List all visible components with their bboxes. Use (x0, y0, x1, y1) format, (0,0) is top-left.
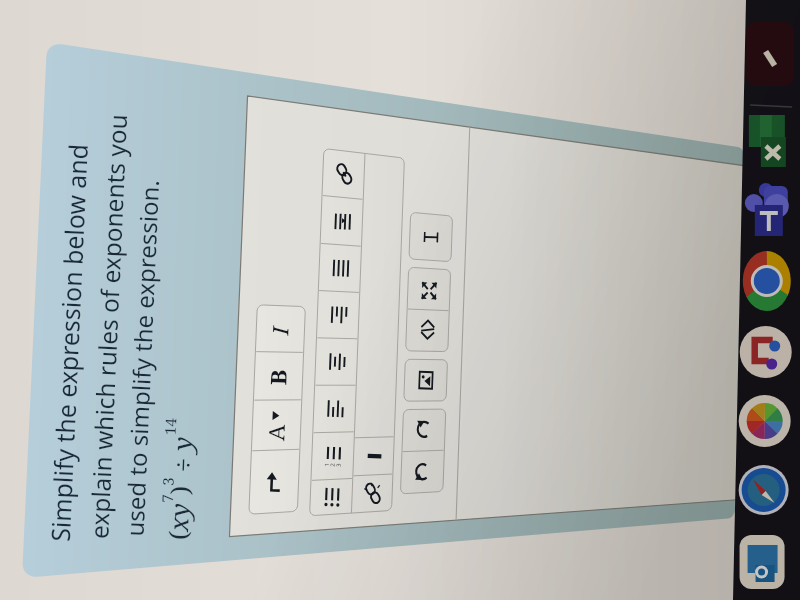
button[interactable] (0, 0, 800, 600)
